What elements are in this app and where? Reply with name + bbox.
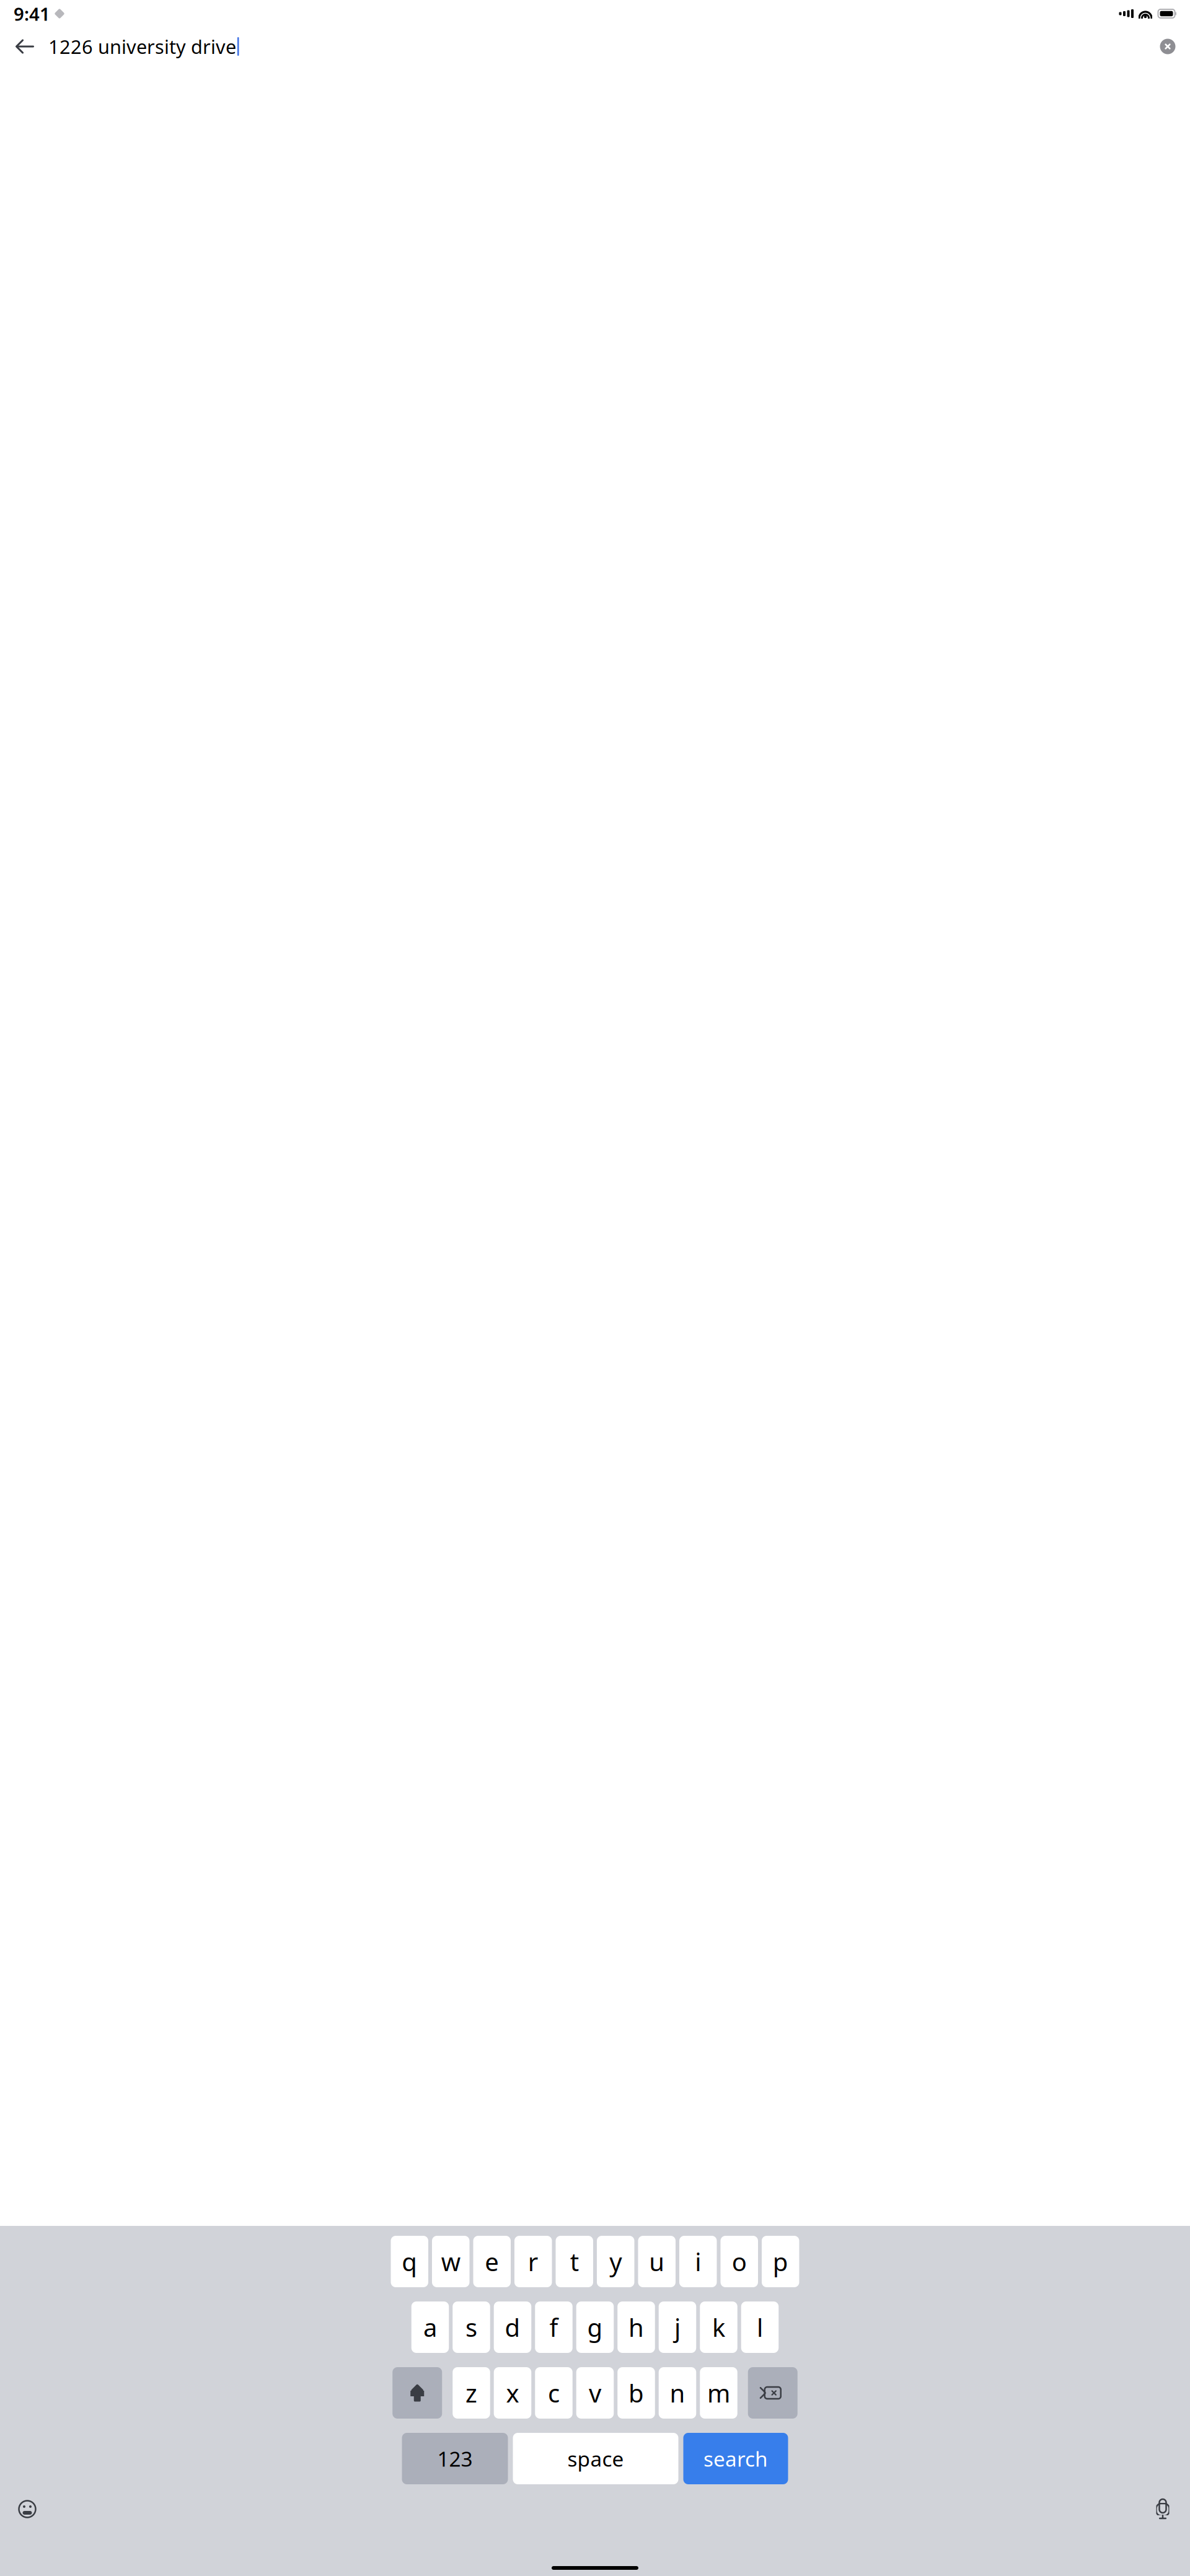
button[interactable]: g [576,2301,614,2353]
button[interactable]: l [741,2301,779,2353]
staticText: 9:41 [14,2,50,26]
button[interactable]: u [638,2236,676,2287]
button[interactable]: d [494,2301,531,2353]
button[interactable]: i [679,2236,717,2287]
staticText: i [695,2245,701,2278]
staticText: w [441,2245,460,2278]
button[interactable]: t [556,2236,593,2287]
staticText: g [587,2311,603,2344]
staticText: search [703,2445,768,2472]
staticText: j [674,2311,681,2344]
button[interactable]: s [453,2301,490,2353]
button[interactable]: search [683,2433,788,2484]
staticText: r [528,2245,538,2278]
button[interactable]: m [700,2367,737,2419]
button[interactable]: f [535,2301,573,2353]
button[interactable]: v [576,2367,614,2419]
staticText: n [670,2376,685,2409]
button[interactable]: b [617,2367,655,2419]
staticText: h [628,2311,644,2344]
button[interactable]: p [762,2236,799,2287]
staticText: d [505,2311,520,2344]
button[interactable]: 123 [402,2433,508,2484]
button[interactable]: q [391,2236,428,2287]
button[interactable]: y [597,2236,634,2287]
button[interactable]: a [411,2301,449,2353]
staticText: z [465,2376,477,2409]
button[interactable]: Clear text [1154,33,1181,60]
button[interactable]: n [659,2367,696,2419]
button[interactable]: e [473,2236,511,2287]
button[interactable]: z [453,2367,490,2419]
button[interactable]: j [659,2301,696,2353]
staticText: space [567,2445,624,2472]
staticText: k [712,2311,725,2344]
button[interactable]: r [514,2236,552,2287]
button[interactable]: w [432,2236,469,2287]
staticText: u [649,2245,665,2278]
button[interactable]: c [535,2367,573,2419]
staticText: l [757,2311,763,2344]
button[interactable]: Back [9,30,41,63]
button[interactable]: space [513,2433,678,2484]
staticText: s [465,2311,477,2344]
button[interactable]: x [494,2367,531,2419]
staticText: 123 [437,2445,473,2472]
staticText: q [402,2245,417,2278]
staticText: b [628,2376,644,2409]
staticText: 1226 university drive [48,34,236,59]
staticText: o [732,2245,747,2278]
button[interactable]: Emoji [10,2492,45,2526]
button[interactable]: o [721,2236,758,2287]
staticText: x [506,2376,519,2409]
staticText: v [589,2376,601,2409]
staticText: p [773,2245,788,2278]
staticText: m [707,2376,730,2409]
staticText: a [423,2311,437,2344]
staticText: t [570,2245,579,2278]
staticText: f [549,2311,558,2344]
staticText: e [485,2245,499,2278]
staticText: y [609,2245,622,2278]
button[interactable]: Shift [392,2367,442,2419]
button[interactable]: Delete [748,2367,798,2419]
button[interactable]: Dictate [1145,2492,1180,2526]
button[interactable]: k [700,2301,737,2353]
button[interactable]: h [617,2301,655,2353]
staticText: c [548,2376,560,2409]
